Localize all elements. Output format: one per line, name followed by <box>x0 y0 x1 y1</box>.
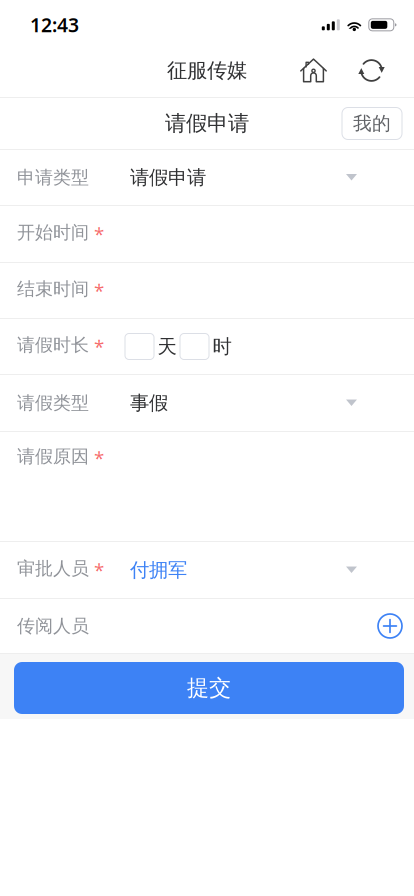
staticText: 请假申请 <box>130 165 206 190</box>
staticText: 12:43 <box>30 12 79 38</box>
button[interactable]: 开始时间 <box>0 206 414 262</box>
staticText: 时 <box>212 334 231 359</box>
staticText: * <box>94 334 104 359</box>
staticText: 申请类型 <box>17 166 89 189</box>
staticText: 付拥军 <box>130 558 187 582</box>
staticText: 结束时间 <box>17 278 89 300</box>
staticText: * <box>94 445 104 471</box>
staticText: 请假时长 <box>17 334 89 356</box>
staticText: 传阅人员 <box>17 615 89 637</box>
staticText: 我的 <box>353 112 391 135</box>
staticText: * <box>94 278 104 303</box>
staticText: 审批人员 <box>17 557 89 580</box>
button[interactable]: 结束时间 <box>0 263 414 318</box>
button[interactable]: 我的 <box>342 107 402 139</box>
staticText: 请假原因 <box>17 445 89 468</box>
staticText: 事假 <box>130 391 168 415</box>
button[interactable]: 申请类型 <box>0 150 414 205</box>
staticText: 征服传媒 <box>167 58 247 83</box>
button[interactable]: Refresh <box>349 48 393 92</box>
staticText: 请假申请 <box>165 110 249 137</box>
button[interactable]: 请假类型 <box>0 375 414 431</box>
staticText: 请假类型 <box>17 392 89 414</box>
staticText: 提交 <box>187 674 231 702</box>
button[interactable]: 审批人员 <box>0 542 414 598</box>
staticText: 天 <box>157 334 176 359</box>
button[interactable]: 提交 <box>0 654 414 719</box>
button[interactable]: Home <box>291 48 335 92</box>
button[interactable]: Add reader <box>372 608 408 644</box>
button[interactable]: 请假原因 <box>0 432 414 541</box>
staticText: * <box>94 221 104 247</box>
staticText: 开始时间 <box>17 221 89 244</box>
staticText: * <box>94 557 104 583</box>
